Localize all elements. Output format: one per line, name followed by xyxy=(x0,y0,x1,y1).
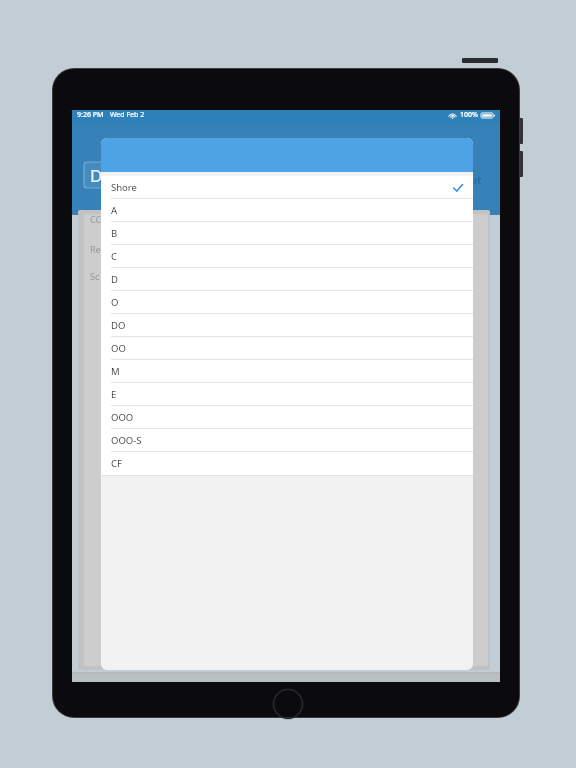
button[interactable]: C xyxy=(101,245,473,268)
button[interactable]: B xyxy=(101,222,473,245)
staticText: D xyxy=(111,273,118,286)
staticText: M xyxy=(111,365,120,378)
staticText: A xyxy=(111,204,118,217)
button[interactable]: D xyxy=(101,268,473,291)
button[interactable]: E xyxy=(101,383,473,406)
button[interactable]: OOO-S xyxy=(101,429,473,452)
staticText: 100% xyxy=(460,110,478,120)
staticText: OOO-S xyxy=(111,434,142,447)
staticText: CC xyxy=(90,213,102,225)
button[interactable]: A xyxy=(101,199,473,222)
button[interactable]: CF xyxy=(101,452,473,475)
button[interactable]: OO xyxy=(101,337,473,360)
staticText: Sc xyxy=(90,270,100,282)
button[interactable]: Home xyxy=(272,688,304,720)
staticText: CF xyxy=(111,457,122,470)
other: Volume down xyxy=(518,151,523,177)
staticText: O xyxy=(111,296,119,309)
staticText: DO xyxy=(111,319,126,332)
other: Volume up xyxy=(518,118,523,144)
staticText: 9:26 PM xyxy=(77,110,104,120)
staticText: Shore xyxy=(111,181,137,194)
staticText: OO xyxy=(111,342,126,355)
button[interactable]: D xyxy=(84,162,444,188)
button[interactable]: OOO xyxy=(101,406,473,429)
staticText: Wed Feb 2 xyxy=(110,110,145,120)
staticText: OOO xyxy=(111,411,134,424)
button[interactable]: DO xyxy=(101,314,473,337)
button[interactable]: M xyxy=(101,360,473,383)
button[interactable]: Shore xyxy=(101,176,473,199)
other: Power xyxy=(462,58,498,63)
staticText: B xyxy=(111,227,118,240)
button[interactable]: O xyxy=(101,291,473,314)
staticText: D xyxy=(90,164,103,187)
staticText: C xyxy=(111,250,118,263)
staticText: E xyxy=(111,388,117,401)
staticText: Re xyxy=(90,243,101,255)
button[interactable]: ut xyxy=(470,172,482,187)
